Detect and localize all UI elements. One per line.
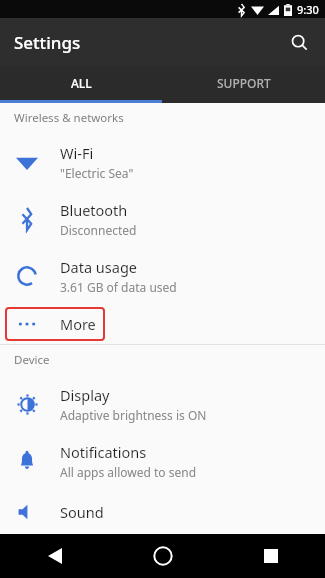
- staticText: Data usage: [60, 257, 137, 277]
- staticText: Disconnected: [60, 222, 137, 238]
- button[interactable]: Wi-Fi: [0, 133, 325, 190]
- button[interactable]: Notifications: [0, 432, 325, 489]
- staticText: All apps allowed to send: [60, 464, 197, 480]
- staticText: SUPPORT: [217, 75, 271, 91]
- button[interactable]: Back: [0, 534, 109, 578]
- staticText: Adaptive brightness is ON: [60, 407, 207, 423]
- button[interactable]: ALL: [0, 66, 162, 100]
- button[interactable]: SUPPORT: [162, 66, 325, 100]
- button[interactable]: Data usage: [0, 247, 325, 304]
- staticText: Settings: [14, 31, 81, 54]
- button[interactable]: Sound: [0, 489, 325, 534]
- button[interactable]: Recents: [217, 534, 325, 578]
- staticText: Wi-Fi: [60, 143, 94, 163]
- staticText: Sound: [60, 502, 104, 522]
- staticText: "Electric Sea": [60, 165, 134, 181]
- staticText: ALL: [71, 75, 92, 91]
- staticText: Device: [14, 352, 50, 368]
- staticText: Wireless & networks: [14, 110, 124, 126]
- button[interactable]: Display: [0, 375, 325, 432]
- staticText: More: [60, 314, 96, 334]
- button[interactable]: Search: [279, 22, 319, 62]
- staticText: Bluetooth: [60, 200, 128, 220]
- button[interactable]: Bluetooth: [0, 190, 325, 247]
- button[interactable]: Home: [109, 534, 217, 578]
- staticText: Display: [60, 385, 110, 405]
- staticText: 9:30: [297, 2, 319, 17]
- staticText: Notifications: [60, 442, 147, 462]
- staticText: 3.61 GB of data used: [60, 279, 177, 295]
- button[interactable]: More: [0, 304, 325, 344]
